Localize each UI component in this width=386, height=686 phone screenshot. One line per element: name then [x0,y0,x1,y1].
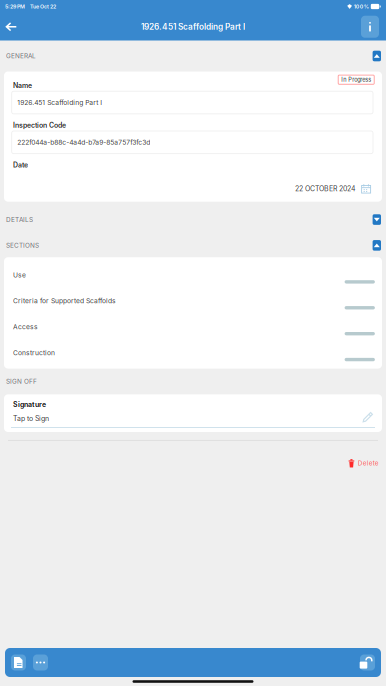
staticText: 22 OCTOBER 2024 [295,184,355,193]
button[interactable]: Back [0,14,22,40]
staticText: Date [13,161,28,169]
button[interactable]: Expand section [373,214,381,225]
staticText: Signature [13,400,46,409]
staticText: Tap to Sign [13,414,49,423]
staticText: Access [13,323,38,331]
button[interactable]: Information [361,16,386,38]
button[interactable]: Export PDF [11,654,26,670]
staticText: SIGN OFF [6,378,37,385]
button[interactable]: Criteria for Supported Scaffolds [4,288,382,314]
button[interactable]: Unlock [360,654,375,670]
button[interactable]: Collapse section [373,51,381,61]
staticText: SECTIONS [6,241,39,249]
button[interactable]: In Progress [338,71,382,84]
staticText: 5:29 PM [5,3,25,10]
staticText: 100% [354,3,369,10]
staticText: Construction [13,349,55,357]
button[interactable]: More options [33,654,48,670]
staticText: GENERAL [6,52,36,60]
staticText: Criteria for Supported Scaffolds [13,297,116,305]
button[interactable]: Access [4,314,382,340]
button[interactable]: Use [4,262,382,288]
staticText: DETAILS [6,216,33,223]
staticText: Use [13,271,26,279]
button[interactable]: Construction [4,340,382,366]
button[interactable]: Collapse section [373,240,381,251]
staticText: Delete [358,459,379,467]
staticText: 1926.451 Scaffolding Part I [141,22,245,32]
staticText: Tue Oct 22 [30,3,56,10]
staticText: In Progress [341,76,371,83]
button[interactable]: Delete [348,453,386,474]
staticText: 222f044a-b88c-4a4d-b7a9-85a757f3fc3d [17,138,150,146]
staticText: 1926.451 Scaffolding Part I [17,98,102,107]
staticText: Inspection Code [13,121,66,129]
staticText: Name [13,81,32,90]
